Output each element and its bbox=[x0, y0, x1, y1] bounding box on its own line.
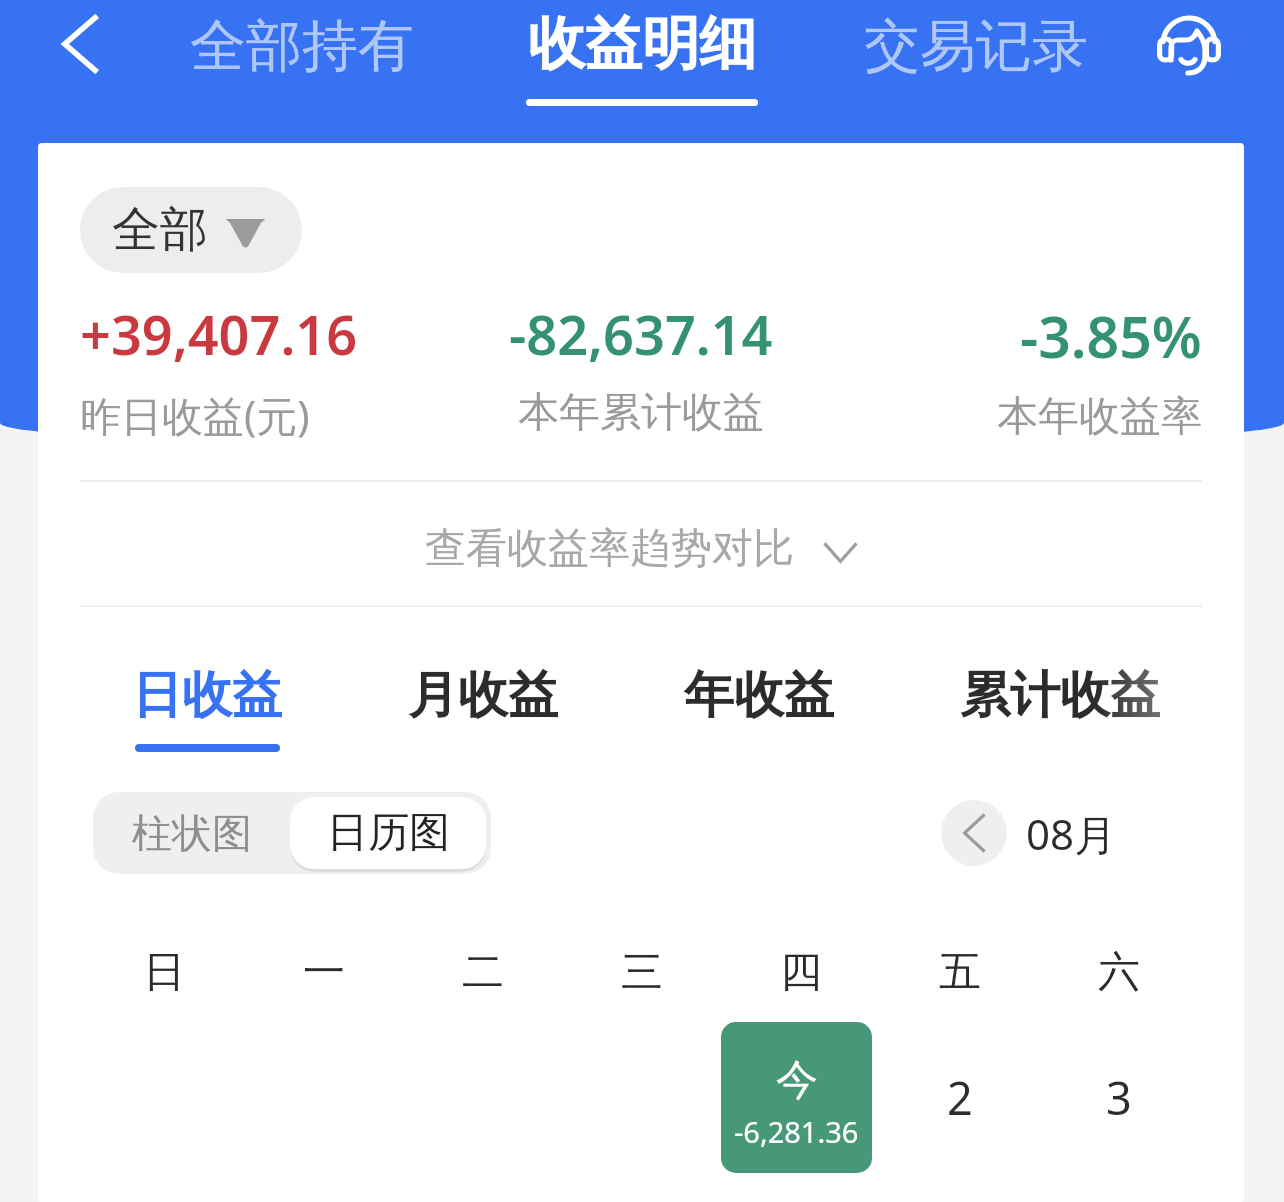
staticText: 年收益 bbox=[684, 664, 834, 727]
button[interactable]: 收益明细 bbox=[512, 0, 772, 106]
staticText: 08月 bbox=[1026, 805, 1117, 862]
staticText: 六 bbox=[1098, 946, 1140, 999]
staticText: -82,637.14 bbox=[509, 297, 773, 371]
staticText: 今 bbox=[776, 1054, 818, 1107]
staticText: 一 bbox=[303, 946, 345, 999]
staticText: 柱状图 bbox=[132, 808, 252, 858]
staticText: +39,407.16 bbox=[80, 297, 358, 371]
staticText: 本年收益率 bbox=[997, 391, 1202, 443]
button[interactable]: 日历图 bbox=[290, 797, 486, 869]
staticText: 收益明细 bbox=[528, 8, 756, 80]
staticText: 交易记录 bbox=[864, 11, 1088, 82]
staticText: 全部 bbox=[112, 200, 208, 260]
button[interactable]: 全部持有 bbox=[176, 0, 428, 105]
staticText: 3 bbox=[1106, 1067, 1132, 1128]
staticText: 五 bbox=[939, 946, 981, 999]
button[interactable]: 柱状图 bbox=[93, 792, 290, 874]
button[interactable]: 累计收益 bbox=[960, 664, 1160, 744]
button[interactable]: 日收益 bbox=[132, 664, 282, 752]
button[interactable]: Customer service bbox=[1141, 0, 1237, 89]
staticText: -6,281.36 bbox=[734, 1112, 859, 1151]
button[interactable]: 今 bbox=[721, 1022, 872, 1173]
button[interactable]: 交易记录 bbox=[850, 0, 1102, 105]
staticText: 日历图 bbox=[327, 807, 450, 859]
staticText: 日 bbox=[143, 946, 185, 999]
staticText: 二 bbox=[462, 946, 504, 999]
button[interactable]: 2 bbox=[880, 1022, 1039, 1173]
staticText: 昨日收益(元) bbox=[80, 387, 310, 443]
staticText: 三 bbox=[621, 946, 663, 999]
staticText: 查看收益率趋势对比 bbox=[425, 523, 794, 575]
staticText: 2 bbox=[947, 1067, 973, 1128]
staticText: 四 bbox=[780, 946, 822, 999]
other: Previous month bbox=[941, 800, 1007, 866]
staticText: 日收益 bbox=[132, 664, 282, 727]
button[interactable]: 月收益 bbox=[408, 664, 558, 744]
staticText: 月收益 bbox=[408, 664, 558, 727]
button[interactable]: 全部 bbox=[80, 187, 302, 273]
staticText: 本年累计收益 bbox=[518, 387, 764, 439]
staticText: 累计收益 bbox=[960, 664, 1160, 727]
button[interactable]: Previous month bbox=[941, 785, 1117, 881]
staticText: -3.85% bbox=[1020, 297, 1202, 375]
button[interactable]: 年收益 bbox=[684, 664, 834, 744]
button[interactable]: 3 bbox=[1039, 1022, 1198, 1173]
button[interactable]: Back bbox=[0, 0, 161, 88]
button[interactable]: 查看收益率趋势对比 bbox=[38, 482, 1244, 605]
staticText: 全部持有 bbox=[190, 11, 414, 82]
